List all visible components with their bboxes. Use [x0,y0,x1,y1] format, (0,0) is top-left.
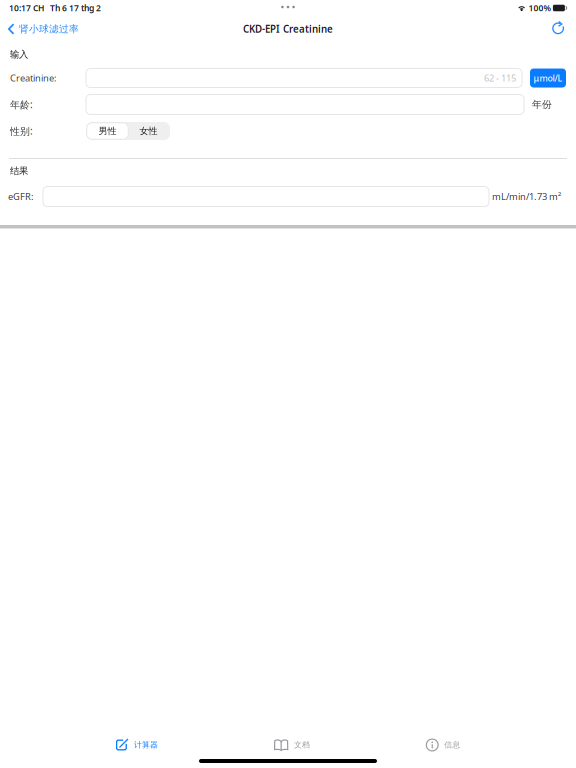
staticText: 文档 [294,740,310,750]
button[interactable]: 肾小球滤过率 [0,16,85,42]
button[interactable]: 女性 [128,123,169,139]
staticText: Creatinine: [10,72,57,84]
staticText: CKD-EPI Creatinine [243,22,333,36]
staticText: 性别: [10,124,33,138]
staticText: 输入 [10,49,28,60]
staticText: Th 6 17 thg 2 [50,2,101,14]
staticText: 女性 [139,125,157,137]
staticText: μmol/L [533,72,562,84]
staticText: 10:17 CH [9,2,44,14]
button[interactable]: 文档 [274,735,310,755]
button[interactable]: 信息 [426,735,460,755]
staticText: 62 - 115 [484,72,516,84]
button[interactable]: μmol/L [530,68,566,87]
staticText: 计算器 [134,740,158,750]
staticText: 100% [528,2,550,14]
staticText: 年龄: [10,98,33,111]
staticText: 结果 [10,165,28,177]
button[interactable]: 男性 [87,123,128,139]
staticText: 信息 [444,740,460,750]
staticText: 肾小球滤过率 [19,23,79,35]
staticText: mL/min/1.73 m² [492,190,561,203]
staticText: 年份 [532,98,552,111]
staticText: eGFR: [8,190,34,203]
button[interactable]: Reset [548,16,571,42]
button[interactable]: 计算器 [116,735,158,755]
staticText: 男性 [98,125,116,137]
